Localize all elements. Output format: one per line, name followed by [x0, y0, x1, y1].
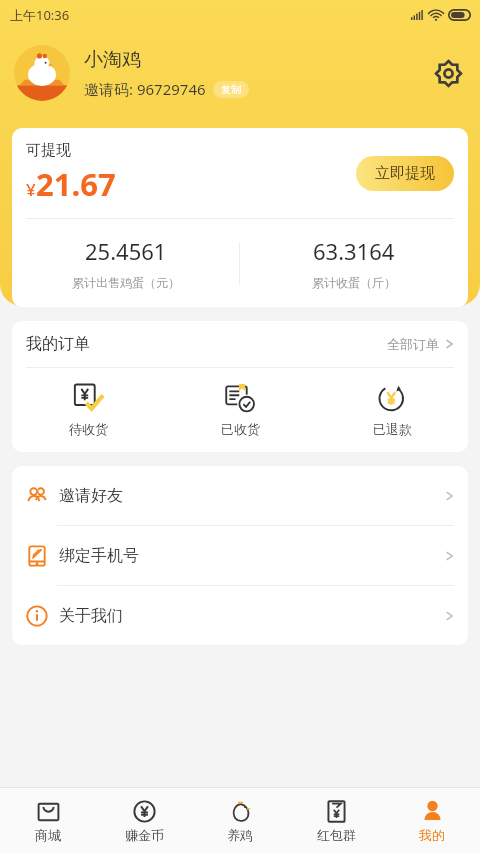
- button[interactable]: 待收货: [12, 368, 164, 452]
- staticText: 养鸡: [227, 827, 253, 843]
- staticText: 已退款: [373, 421, 412, 437]
- button[interactable]: 我的订单: [12, 321, 468, 367]
- staticText: 立即提现: [375, 164, 435, 183]
- staticText: 待收货: [69, 421, 108, 437]
- button[interactable]: 我的: [384, 788, 480, 854]
- button[interactable]: 复制: [213, 81, 249, 98]
- staticText: 复制: [221, 83, 241, 96]
- button[interactable]: 63.3164: [240, 219, 468, 307]
- staticText: 累计收蛋（斤）: [312, 275, 396, 290]
- button[interactable]: 红包群: [288, 788, 384, 854]
- staticText: 我的: [419, 827, 445, 843]
- staticText: 21.67: [36, 163, 116, 205]
- staticText: 关于我们: [59, 606, 123, 626]
- staticText: 绑定手机号: [59, 546, 139, 566]
- button[interactable]: Settings: [430, 55, 466, 91]
- button[interactable]: 已退款: [316, 368, 468, 452]
- button[interactable]: 商城: [0, 788, 96, 854]
- button[interactable]: 邀请好友: [12, 466, 468, 526]
- staticText: 可提现: [26, 141, 71, 160]
- button[interactable]: Profile avatar: [14, 45, 70, 101]
- staticText: 赚金币: [125, 827, 164, 843]
- button[interactable]: 绑定手机号: [12, 526, 468, 586]
- staticText: 累计出售鸡蛋（元）: [72, 275, 180, 290]
- button[interactable]: 25.4561: [12, 219, 239, 307]
- staticText: 商城: [35, 827, 61, 843]
- staticText: 63.3164: [313, 236, 395, 266]
- staticText: 小淘鸡: [84, 48, 141, 72]
- button[interactable]: 立即提现: [356, 156, 454, 191]
- button[interactable]: 已收货: [164, 368, 316, 452]
- button[interactable]: 赚金币: [96, 788, 192, 854]
- staticText: 全部订单: [387, 336, 439, 352]
- staticText: 红包群: [317, 827, 356, 843]
- staticText: ¥: [26, 178, 36, 201]
- staticText: 已收货: [221, 421, 260, 437]
- staticText: 我的订单: [26, 334, 90, 354]
- staticText: 上午10:36: [10, 6, 70, 24]
- button[interactable]: 养鸡: [192, 788, 288, 854]
- staticText: 25.4561: [85, 236, 167, 266]
- staticText: 邀请码: 96729746: [84, 79, 206, 99]
- staticText: 邀请好友: [59, 486, 123, 506]
- button[interactable]: 关于我们: [12, 586, 468, 645]
